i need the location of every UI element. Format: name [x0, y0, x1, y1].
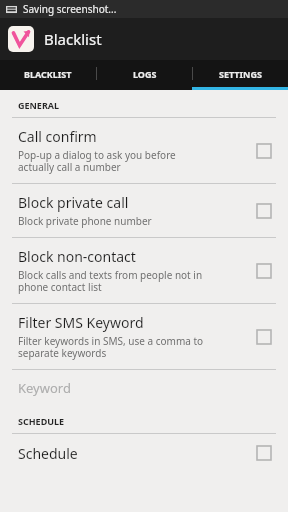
staticText: GENERAL — [18, 99, 60, 111]
button[interactable]: Call confirm — [0, 118, 288, 183]
staticText: Block calls and texts from people not in… — [18, 268, 203, 294]
staticText: Block non-contact — [18, 247, 136, 266]
staticText: Block private phone number — [18, 214, 152, 228]
staticText: BLACKLIST — [24, 68, 72, 80]
button[interactable]: Keyword — [0, 370, 288, 406]
staticText: SETTINGS — [219, 68, 262, 80]
staticText: LOGS — [133, 68, 157, 80]
button[interactable]: SETTINGS — [193, 60, 288, 87]
button[interactable]: Schedule — [0, 434, 288, 472]
button[interactable]: BLACKLIST — [0, 60, 96, 87]
staticText: Filter SMS Keyword — [18, 313, 144, 332]
staticText: Schedule — [18, 444, 78, 463]
staticText: Filter keywords in SMS, use a comma to s… — [18, 334, 204, 360]
staticText: Keyword — [18, 379, 71, 397]
staticText: Pop-up a dialog to ask you before actual… — [18, 148, 176, 174]
button[interactable]: Toggle setting — [254, 141, 274, 161]
other: App icon — [8, 26, 34, 52]
staticText: Saving screenshot... — [23, 2, 117, 16]
button[interactable]: Toggle setting — [254, 201, 274, 221]
button[interactable]: Block private call — [0, 184, 288, 237]
staticText: Block private call — [18, 193, 129, 212]
button[interactable]: Toggle setting — [254, 443, 274, 463]
button[interactable]: Toggle setting — [254, 261, 274, 281]
button[interactable]: Block non-contact — [0, 238, 288, 303]
staticText: Call confirm — [18, 127, 97, 146]
staticText: Blacklist — [44, 29, 102, 49]
button[interactable]: LOGS — [97, 60, 192, 87]
button[interactable]: Toggle setting — [254, 327, 274, 347]
staticText: SCHEDULE — [18, 415, 65, 427]
button[interactable]: Filter SMS Keyword — [0, 304, 288, 369]
